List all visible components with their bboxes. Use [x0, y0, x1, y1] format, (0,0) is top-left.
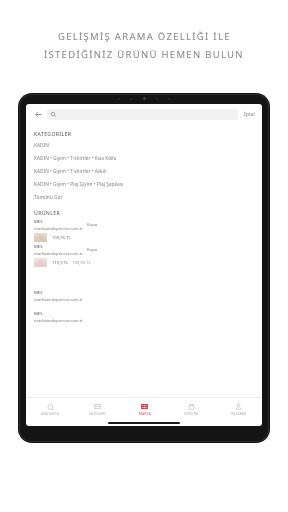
button[interactable]: MES [26, 218, 262, 243]
button[interactable]: ANA SAYFA [26, 403, 74, 416]
staticText: markaandspencer.com.tr [34, 318, 83, 324]
staticText: markaandspencer.com.tr [34, 226, 83, 232]
staticText: HESABIM [231, 412, 247, 416]
staticText: ÜRÜNLER [34, 209, 60, 216]
staticText: KADIN • Giyim • T-shirtler • Kısa Kollu [34, 155, 117, 162]
staticText: SEPETİM [184, 412, 199, 416]
staticText: KATEGORİ [89, 412, 106, 416]
button[interactable]: Tümünü Gör [26, 191, 262, 204]
button[interactable]: MES [26, 311, 262, 324]
staticText: İSTEDİĞİNİZ ÜRÜNÜ HEMEN BULUN [44, 48, 244, 61]
staticText: 109,95 TL [52, 235, 71, 241]
button[interactable]: KADIN • Giyim • T-shirtler • Askılı [26, 165, 262, 178]
staticText: Tümünü Gör [34, 194, 63, 201]
button[interactable]: MES [26, 243, 262, 268]
staticText: KATEGORİLER [34, 130, 72, 137]
button[interactable]: SEPETİM [168, 403, 215, 416]
button[interactable] [47, 109, 238, 120]
button[interactable]: İptal [243, 111, 256, 118]
button[interactable]: KADIN • Giyim • Plaj Giyim • Plaj Şapkas… [26, 178, 262, 191]
staticText: 119,9 TL [52, 260, 69, 266]
staticText: GELİŞMİŞ ARAMA ÖZELLİĞİ İLE [58, 30, 231, 43]
staticText: markaandspencer.com.tr [34, 297, 83, 303]
button[interactable]: Geri [32, 108, 44, 120]
staticText: Kupa [87, 222, 98, 228]
button[interactable]: MARKA [121, 403, 168, 416]
staticText: ANA SAYFA [41, 412, 60, 416]
staticText: MARKA [139, 412, 151, 416]
button[interactable]: MES [26, 290, 262, 303]
staticText: MES [34, 290, 43, 296]
button[interactable]: HESABIM [215, 403, 262, 416]
staticText: KADIN • Giyim • T-shirtler • Askılı [34, 168, 107, 175]
staticText: Kupa [87, 247, 98, 253]
staticText: markaandspencer.com.tr [34, 251, 83, 257]
staticText: KADIN • Giyim • Plaj Giyim • Plaj Şapkas… [34, 181, 124, 188]
staticText: 199,96 TL [72, 260, 91, 266]
staticText: MES [34, 244, 43, 250]
staticText: MES [34, 219, 43, 225]
staticText: KADIN [34, 142, 49, 149]
button[interactable]: KADIN [26, 139, 262, 152]
button[interactable]: KADIN • Giyim • T-shirtler • Kısa Kollu [26, 152, 262, 165]
button[interactable]: KATEGORİ [74, 403, 121, 416]
staticText: İptal [244, 111, 255, 118]
staticText: MES [34, 311, 43, 317]
